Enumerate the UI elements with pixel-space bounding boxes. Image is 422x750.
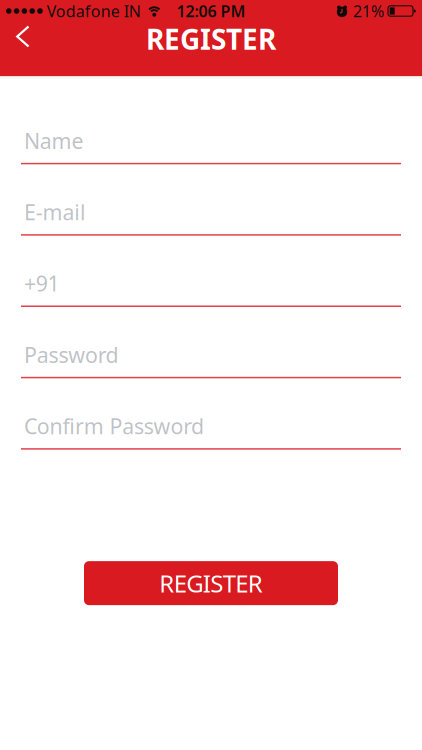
button[interactable]: Password text field	[21, 340, 401, 378]
button[interactable]: Confirm Password text field	[21, 412, 401, 450]
button[interactable]: Name text field	[21, 126, 401, 164]
button[interactable]: REGISTER	[84, 561, 338, 605]
staticText: REGISTER	[146, 20, 276, 58]
staticText: 21%	[353, 0, 384, 22]
staticText: Name	[24, 126, 83, 155]
staticText: +91	[24, 269, 60, 297]
button[interactable]: Back	[0, 25, 30, 52]
button[interactable]: E-mail text field	[21, 198, 401, 236]
button[interactable]: +91 text field	[21, 269, 401, 307]
staticText: E-mail	[24, 198, 86, 226]
staticText: 12:06 PM	[176, 0, 245, 22]
staticText: REGISTER	[159, 567, 263, 599]
staticText: Vodafone IN	[47, 0, 141, 22]
staticText: Confirm Password	[24, 412, 204, 440]
staticText: Password	[24, 340, 119, 369]
